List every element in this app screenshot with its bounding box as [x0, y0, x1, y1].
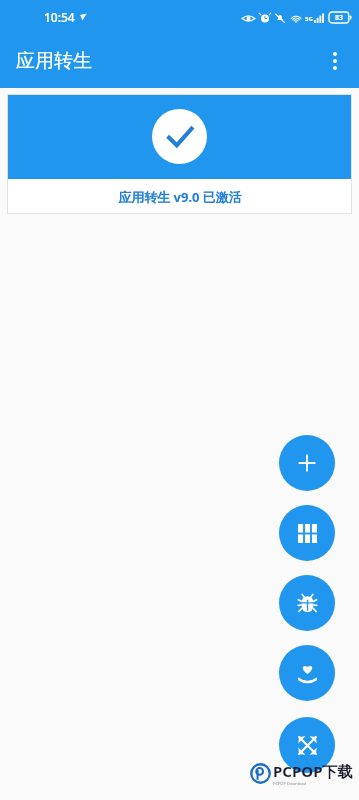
button[interactable]: More options: [311, 37, 359, 85]
button[interactable]: Add: [279, 435, 335, 491]
button[interactable]: 应用转生 v9.0 已激活: [7, 94, 352, 214]
staticText: 5G: [305, 15, 313, 23]
staticText: 10:54: [44, 9, 75, 25]
staticText: PCPOP Download: [273, 781, 306, 786]
staticText: PCPOP下载: [273, 761, 353, 781]
button[interactable]: Expand: [279, 717, 335, 773]
button[interactable]: Donate: [279, 645, 335, 701]
button[interactable]: Debug: [279, 575, 335, 631]
button[interactable]: Apps grid: [279, 505, 335, 561]
staticText: 应用转生 v9.0 已激活: [118, 188, 242, 206]
staticText: 应用转生: [16, 49, 92, 73]
staticText: 83: [335, 13, 344, 23]
